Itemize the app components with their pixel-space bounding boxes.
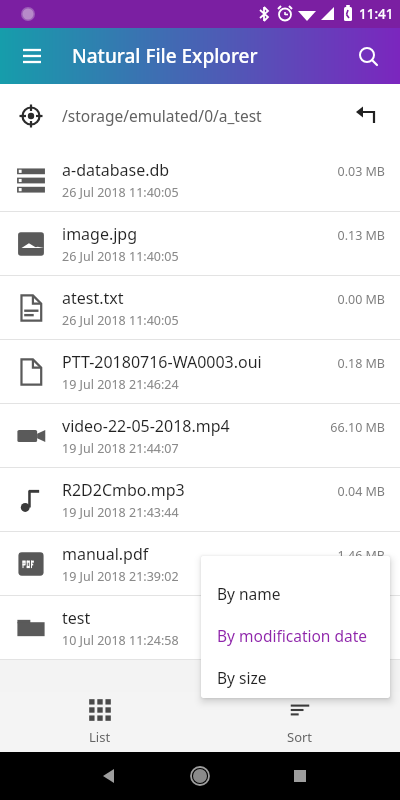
staticText: R2D2Cmbo.mp3 <box>62 479 185 501</box>
staticText: 10 Jul 2018 11:24:58 <box>62 632 179 649</box>
staticText: By name <box>217 583 281 604</box>
staticText: 11:41 <box>359 5 394 23</box>
staticText: 0.03 MB <box>310 163 385 180</box>
staticText: PTT-20180716-WA0003.oui <box>62 351 262 373</box>
button[interactable]: List <box>0 692 200 752</box>
staticText: By size <box>217 667 267 688</box>
button[interactable]: test <box>0 596 400 659</box>
staticText: image.jpg <box>62 223 138 245</box>
staticText: 0.00 MB <box>310 291 385 308</box>
button[interactable]: video-22-05-2018.mp4 <box>0 404 400 467</box>
button[interactable]: By modification date <box>201 614 390 656</box>
staticText: 0.04 MB <box>310 483 385 500</box>
staticText: 1.46 MB <box>310 547 385 564</box>
button[interactable]: PTT-20180716-WA0003.oui <box>0 340 400 403</box>
staticText: atest.txt <box>62 287 124 309</box>
staticText: a-database.db <box>62 159 170 181</box>
button[interactable]: Current location <box>8 93 54 139</box>
button[interactable]: image.jpg <box>0 212 400 275</box>
staticText: manual.pdf <box>62 543 149 565</box>
staticText: List <box>89 728 111 746</box>
button[interactable]: Open navigation menu <box>8 32 56 80</box>
button[interactable]: manual.pdf <box>0 532 400 595</box>
staticText: 19 Jul 2018 21:39:02 <box>62 568 179 585</box>
staticText: 26 Jul 2018 11:40:05 <box>62 248 179 265</box>
staticText: 66.10 MB <box>310 419 385 436</box>
staticText: /storage/emulated/0/a_test <box>62 105 262 126</box>
staticText: 26 Jul 2018 11:40:05 <box>62 312 179 329</box>
staticText: 0.18 MB <box>310 355 385 372</box>
staticText: 26 Jul 2018 11:40:05 <box>62 184 179 201</box>
staticText: Natural File Explorer <box>72 43 258 69</box>
button[interactable]: By name <box>201 572 390 614</box>
button[interactable]: atest.txt <box>0 276 400 339</box>
button[interactable]: Sort <box>200 692 400 752</box>
button[interactable]: Search <box>344 32 392 80</box>
staticText: Sort <box>287 728 313 746</box>
button[interactable]: Go up <box>344 94 388 138</box>
staticText: 19 Jul 2018 21:44:07 <box>62 440 179 457</box>
staticText: 0.13 MB <box>310 227 385 244</box>
staticText: test <box>62 607 91 629</box>
staticText: By modification date <box>217 625 368 646</box>
button[interactable]: a-database.db <box>0 148 400 211</box>
button[interactable]: By size <box>201 656 390 698</box>
button[interactable]: R2D2Cmbo.mp3 <box>0 468 400 531</box>
staticText: video-22-05-2018.mp4 <box>62 415 230 437</box>
staticText: 19 Jul 2018 21:46:24 <box>62 376 179 393</box>
staticText: 19 Jul 2018 21:43:44 <box>62 504 179 521</box>
